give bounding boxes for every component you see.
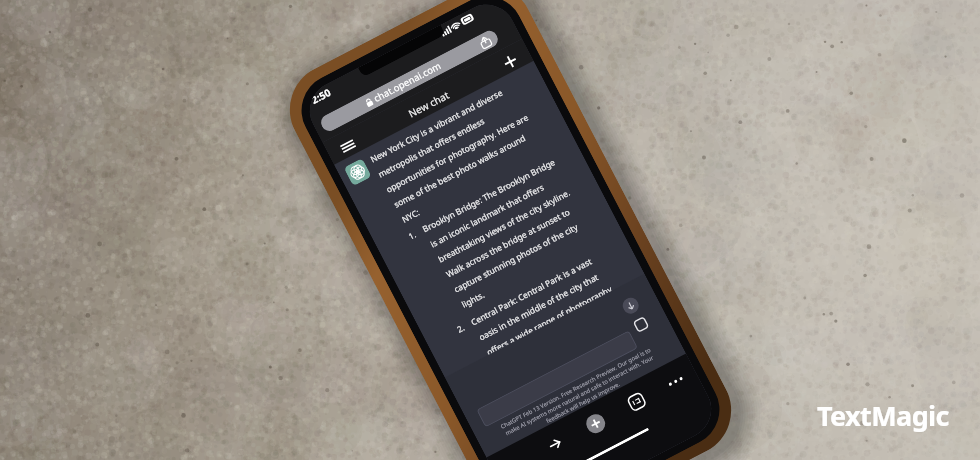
button[interactable]: Forward [544,433,566,455]
staticText: New chat [406,88,451,120]
button[interactable]: Scroll to bottom [620,295,641,316]
button[interactable]: Share [583,411,608,436]
button[interactable]: chat.openai.com [318,28,501,134]
staticText: New York City is a vibrant and diverse m… [368,79,550,225]
button[interactable] [476,330,638,427]
button[interactable]: New chat [500,51,521,72]
button[interactable]: Bookmarks [626,391,647,412]
staticText: 2:50 [309,85,333,107]
staticText: Central Park: Central Park is a vast oas… [469,246,644,388]
button[interactable]: Menu [337,135,359,157]
staticText: Brooklyn Bridge: The Brooklyn Bridge is … [420,152,603,310]
staticText: ChatGPT Feb 13 Version. Free Research Pr… [498,346,660,445]
button[interactable]: Share [477,34,494,50]
staticText: 2. [455,321,467,335]
staticText: chat.openai.com [371,59,444,105]
button[interactable]: Stop generating [632,316,650,333]
staticText: 1. [406,228,418,242]
staticText: TextMagic [817,397,949,434]
button[interactable]: Tabs [665,371,686,392]
